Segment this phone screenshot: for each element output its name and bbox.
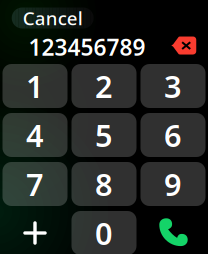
button[interactable]: Delete bbox=[171, 36, 196, 54]
staticText: 3 bbox=[164, 66, 182, 106]
button[interactable]: 2 bbox=[71, 64, 136, 108]
staticText: Cancel bbox=[23, 6, 83, 30]
button[interactable]: 3 bbox=[140, 64, 205, 108]
staticText: 6 bbox=[164, 115, 182, 155]
staticText: 0 bbox=[95, 213, 113, 253]
button[interactable]: 6 bbox=[140, 113, 205, 157]
button[interactable]: 7 bbox=[2, 162, 67, 206]
staticText: 5 bbox=[95, 115, 113, 155]
staticText: 4 bbox=[26, 115, 44, 155]
staticText: 1 bbox=[26, 66, 44, 106]
button[interactable]: 8 bbox=[71, 162, 136, 206]
button[interactable]: Plus bbox=[2, 211, 67, 254]
button[interactable]: Call bbox=[140, 211, 205, 254]
button[interactable]: 1 bbox=[2, 64, 67, 108]
staticText: 8 bbox=[95, 164, 113, 204]
staticText: 9 bbox=[164, 164, 182, 204]
button[interactable]: Cancel bbox=[12, 7, 94, 28]
button[interactable]: 4 bbox=[2, 113, 67, 157]
staticText: 123456789 bbox=[28, 32, 145, 62]
button[interactable]: 9 bbox=[140, 162, 205, 206]
staticText: 7 bbox=[26, 164, 44, 204]
button[interactable]: 5 bbox=[71, 113, 136, 157]
button[interactable]: 0 bbox=[71, 211, 136, 254]
staticText: 2 bbox=[95, 66, 113, 106]
